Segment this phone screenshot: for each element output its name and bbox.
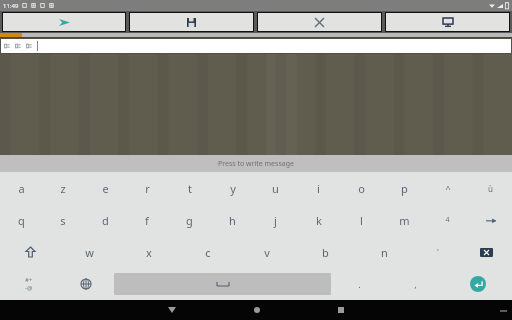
- button[interactable]: ^: [426, 172, 469, 204]
- staticText: 4: [445, 215, 450, 225]
- button[interactable]: k: [297, 204, 340, 236]
- button[interactable]: Back: [162, 300, 182, 320]
- button[interactable]: Save: [130, 13, 253, 31]
- staticText: o: [358, 181, 365, 196]
- button[interactable]: b: [296, 236, 355, 268]
- button[interactable]: [1, 39, 511, 53]
- staticText: ,: [414, 278, 417, 290]
- staticText: -@: [25, 284, 33, 292]
- staticText: 11:49: [3, 2, 19, 10]
- staticText: h: [229, 213, 236, 228]
- staticText: r: [145, 181, 150, 196]
- button[interactable]: Home: [247, 300, 267, 320]
- button[interactable]: l: [340, 204, 383, 236]
- button[interactable]: Shift: [0, 236, 60, 268]
- button[interactable]: Enter: [443, 268, 512, 300]
- button[interactable]: Symbols: [0, 268, 57, 300]
- button[interactable]: w: [60, 236, 119, 268]
- staticText: t: [188, 181, 192, 196]
- staticText: y: [230, 181, 236, 196]
- staticText: w: [85, 245, 94, 260]
- staticText: ù: [488, 183, 493, 194]
- button[interactable]: i: [297, 172, 340, 204]
- staticText: #+: [25, 276, 33, 284]
- staticText: b: [322, 245, 329, 260]
- button[interactable]: d: [84, 204, 126, 236]
- staticText: d: [102, 213, 109, 228]
- button[interactable]: v: [237, 236, 296, 268]
- button[interactable]: y: [211, 172, 254, 204]
- button[interactable]: e: [84, 172, 126, 204]
- button[interactable]: Tab: [469, 204, 512, 236]
- staticText: n: [381, 245, 388, 260]
- staticText: q: [18, 213, 25, 228]
- button[interactable]: Close: [258, 13, 381, 31]
- button[interactable]: p: [383, 172, 426, 204]
- button[interactable]: h: [211, 204, 254, 236]
- button[interactable]: m: [383, 204, 426, 236]
- staticText: c: [205, 245, 211, 260]
- button[interactable]: Recents: [331, 300, 351, 320]
- button[interactable]: j: [254, 204, 297, 236]
- button[interactable]: f: [126, 204, 168, 236]
- button[interactable]: o: [340, 172, 383, 204]
- button[interactable]: q: [0, 204, 42, 236]
- button[interactable]: s: [42, 204, 84, 236]
- staticText: s: [60, 213, 66, 228]
- staticText: e: [102, 181, 109, 196]
- button[interactable]: g: [168, 204, 211, 236]
- button[interactable]: Space: [114, 273, 331, 295]
- staticText: Press to write message: [218, 159, 294, 169]
- button[interactable]: c: [178, 236, 237, 268]
- staticText: k: [316, 213, 322, 228]
- staticText: x: [146, 245, 152, 260]
- staticText: ^: [445, 182, 451, 194]
- button[interactable]: z: [42, 172, 84, 204]
- button[interactable]: r: [126, 172, 168, 204]
- button[interactable]: ù: [469, 172, 512, 204]
- button[interactable]: Send: [3, 13, 125, 31]
- staticText: f: [145, 213, 149, 228]
- staticText: p: [401, 181, 408, 196]
- staticText: .: [358, 278, 361, 290]
- button[interactable]: t: [168, 172, 211, 204]
- button[interactable]: Display: [386, 13, 509, 31]
- staticText: z: [60, 181, 66, 196]
- button[interactable]: Backspace: [461, 236, 512, 268]
- button[interactable]: x: [119, 236, 178, 268]
- button[interactable]: a: [0, 172, 42, 204]
- button[interactable]: u: [254, 172, 297, 204]
- button[interactable]: n: [355, 236, 414, 268]
- staticText: v: [264, 245, 270, 260]
- button[interactable]: 4: [426, 204, 469, 236]
- button[interactable]: Language: [57, 268, 114, 300]
- button[interactable]: Press to write message: [0, 155, 512, 172]
- staticText: j: [274, 213, 277, 228]
- staticText: m: [399, 213, 410, 228]
- staticText: u: [272, 181, 279, 196]
- staticText: a: [18, 181, 25, 196]
- staticText: g: [186, 213, 193, 228]
- staticText: i: [317, 181, 320, 196]
- staticText: l: [360, 213, 363, 228]
- staticText: ': [437, 247, 439, 258]
